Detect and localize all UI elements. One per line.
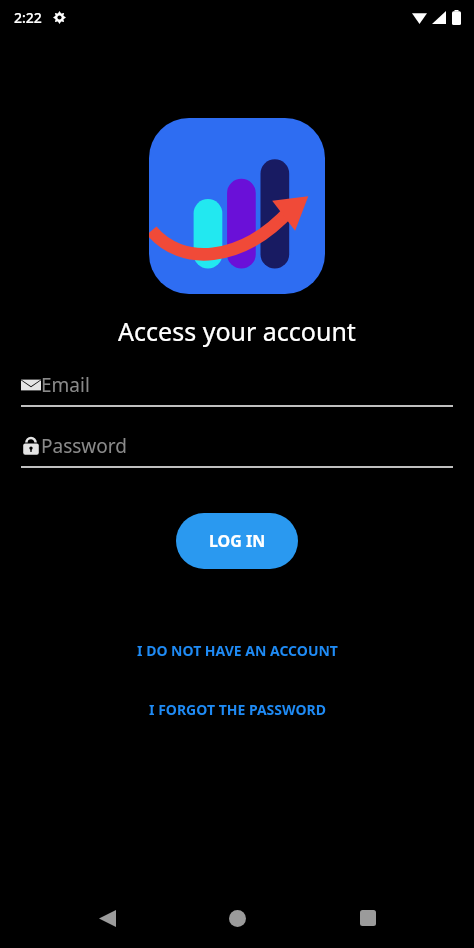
- button[interactable]: I DO NOT HAVE AN ACCOUNT: [125, 637, 350, 664]
- staticText: Email: [41, 372, 90, 398]
- staticText: I FORGOT THE PASSWORD: [149, 700, 326, 719]
- staticText: Access your account: [118, 314, 356, 348]
- staticText: LOG IN: [209, 530, 266, 552]
- button[interactable]: Home: [213, 894, 261, 942]
- button[interactable]: Back: [83, 894, 131, 942]
- button[interactable]: LOG IN: [176, 513, 298, 569]
- staticText: 2:22: [14, 8, 42, 27]
- staticText: I DO NOT HAVE AN ACCOUNT: [137, 641, 338, 660]
- button[interactable]: Recent apps: [344, 894, 392, 942]
- button[interactable]: Password: [21, 433, 453, 468]
- staticText: Password: [41, 433, 127, 459]
- button[interactable]: I FORGOT THE PASSWORD: [137, 696, 338, 723]
- button[interactable]: Email: [21, 372, 453, 407]
